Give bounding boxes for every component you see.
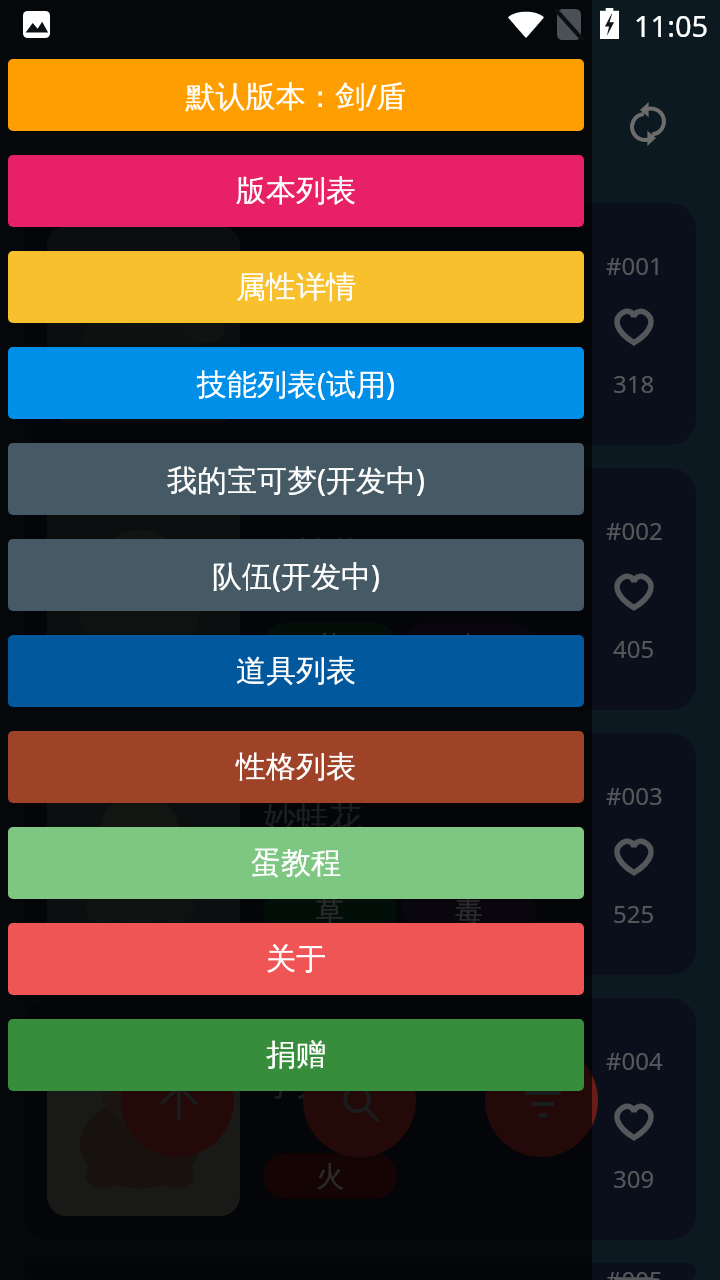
button[interactable]: 捐赠: [8, 1019, 584, 1091]
staticText: 蛋教程: [251, 844, 341, 882]
button[interactable]: 妙蛙草: [24, 468, 696, 710]
button[interactable]: Sync: [632, 102, 664, 146]
button[interactable]: 性格列表: [8, 731, 584, 803]
button[interactable]: Search: [303, 1044, 416, 1157]
staticText: 309: [613, 1162, 655, 1195]
button[interactable]: 关于: [8, 923, 584, 995]
staticText: 妙蛙草: [263, 533, 362, 575]
staticText: 11:05: [634, 6, 709, 45]
button[interactable]: 蛋教程: [8, 827, 584, 899]
button[interactable]: 小火龙: [24, 998, 696, 1240]
button[interactable]: 火恐龙: [24, 1263, 696, 1280]
staticText: 火: [316, 1159, 344, 1194]
staticText: 草: [316, 364, 344, 399]
button[interactable]: Filter: [485, 1044, 598, 1157]
staticText: 我的宝可梦(开发中): [167, 459, 425, 500]
staticText: 妙蛙花: [263, 798, 362, 840]
staticText: 毒: [455, 894, 483, 929]
button[interactable]: 妙蛙种子: [24, 203, 696, 445]
staticText: 405: [613, 632, 655, 665]
staticText: 草: [316, 629, 344, 664]
staticText: #001: [606, 249, 663, 282]
button[interactable]: 草: [263, 888, 397, 934]
button[interactable]: 默认版本：剑/盾: [8, 59, 584, 131]
staticText: 关于: [266, 940, 326, 978]
staticText: 技能列表(试用): [197, 363, 395, 404]
staticText: 版本列表: [236, 172, 356, 210]
staticText: #002: [606, 514, 663, 547]
staticText: 队伍(开发中): [212, 555, 380, 596]
staticText: 捐赠: [266, 1036, 326, 1074]
staticText: #004: [606, 1044, 663, 1077]
staticText: 草: [316, 894, 344, 929]
button[interactable]: 道具列表: [8, 635, 584, 707]
staticText: 毒: [455, 629, 483, 664]
button[interactable]: 火: [263, 1153, 397, 1199]
staticText: 妙蛙种子: [263, 268, 395, 310]
button[interactable]: 队伍(开发中): [8, 539, 584, 611]
button[interactable]: 毒: [402, 888, 536, 934]
staticText: 道具列表: [236, 652, 356, 690]
staticText: #005: [606, 1263, 663, 1280]
staticText: 318: [613, 367, 655, 400]
staticText: #003: [606, 779, 663, 812]
button[interactable]: 草: [263, 358, 397, 404]
button[interactable]: 妙蛙花: [24, 733, 696, 975]
button[interactable]: Scroll to top: [121, 1044, 234, 1157]
staticText: 小火龙: [263, 1063, 362, 1105]
staticText: 525: [613, 897, 655, 930]
button[interactable]: 草: [263, 623, 397, 669]
staticText: 默认版本：剑/盾: [185, 75, 407, 116]
staticText: 性格列表: [236, 748, 356, 786]
button[interactable]: 属性详情: [8, 251, 584, 323]
button[interactable]: 毒: [402, 623, 536, 669]
staticText: 属性详情: [236, 268, 356, 306]
button[interactable]: 技能列表(试用): [8, 347, 584, 419]
button[interactable]: 版本列表: [8, 155, 584, 227]
button[interactable]: 我的宝可梦(开发中): [8, 443, 584, 515]
other: Gallery: [23, 11, 50, 38]
